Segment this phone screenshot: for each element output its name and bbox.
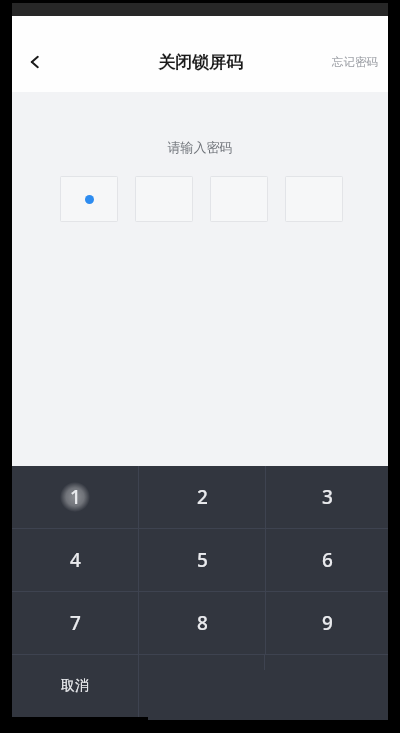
button[interactable]: 忘记密码: [322, 44, 388, 80]
button[interactable]: 2: [139, 466, 265, 528]
button[interactable]: 4: [12, 529, 138, 591]
staticText: 7: [70, 610, 81, 636]
button[interactable]: 8: [139, 592, 265, 654]
staticText: 4: [70, 547, 81, 573]
staticText: 忘记密码: [332, 55, 378, 69]
button[interactable]: 5: [139, 529, 265, 591]
staticText: 请输入密码: [12, 139, 388, 155]
staticText: 取消: [61, 677, 89, 695]
staticText: 9: [322, 610, 333, 636]
staticText: 1: [70, 484, 81, 510]
button[interactable]: 取消: [12, 655, 138, 717]
staticText: 3: [322, 484, 333, 510]
button[interactable]: [285, 176, 343, 222]
button[interactable]: 9: [266, 592, 388, 654]
staticText: 5: [197, 547, 208, 573]
button[interactable]: 7: [12, 592, 138, 654]
button[interactable]: [210, 176, 268, 222]
staticText: 2: [197, 484, 208, 510]
staticText: 关闭锁屏码: [158, 52, 243, 73]
button[interactable]: [135, 176, 193, 222]
button[interactable]: 1: [12, 466, 138, 528]
staticText: 6: [322, 547, 333, 573]
button[interactable]: 6: [266, 529, 388, 591]
button[interactable]: [60, 176, 118, 222]
staticText: 8: [197, 610, 208, 636]
button[interactable]: Back: [12, 39, 58, 85]
button[interactable]: 3: [266, 466, 388, 528]
